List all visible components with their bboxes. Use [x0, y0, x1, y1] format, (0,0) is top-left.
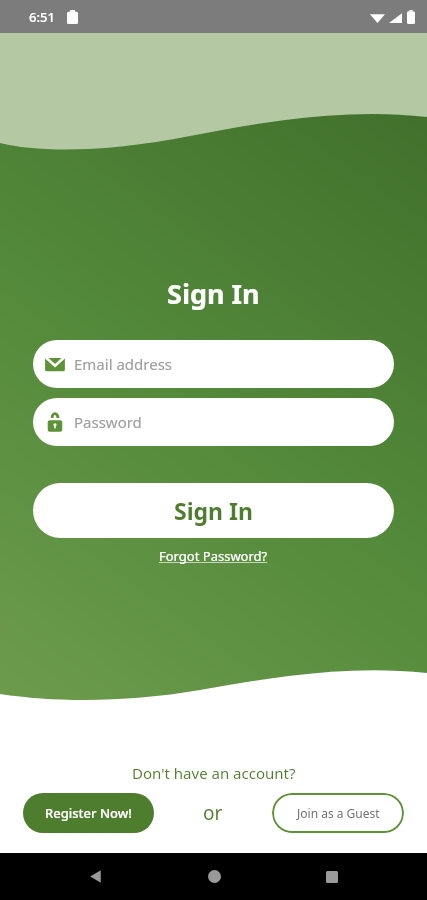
button[interactable]: Sign In: [33, 483, 394, 538]
staticText: Sign In: [174, 495, 253, 526]
staticText: Forgot Password?: [159, 547, 268, 565]
button[interactable]: Back: [71, 853, 119, 900]
staticText: Register Now!: [45, 804, 132, 822]
button[interactable]: Password: [33, 398, 394, 446]
button[interactable]: Email address: [33, 340, 394, 388]
staticText: Email address: [74, 354, 173, 374]
staticText: Join as a Guest: [297, 805, 380, 821]
staticText: Sign In: [167, 275, 260, 312]
button[interactable]: Forgot Password?: [155, 545, 272, 567]
staticText: 6:51: [29, 8, 55, 26]
staticText: or: [203, 800, 223, 826]
staticText: Don't have an account?: [132, 763, 296, 783]
button[interactable]: Recent apps: [308, 853, 356, 900]
button[interactable]: Home: [190, 853, 238, 900]
staticText: Password: [74, 412, 142, 432]
button[interactable]: Join as a Guest: [272, 793, 404, 833]
button[interactable]: Register Now!: [23, 793, 154, 833]
